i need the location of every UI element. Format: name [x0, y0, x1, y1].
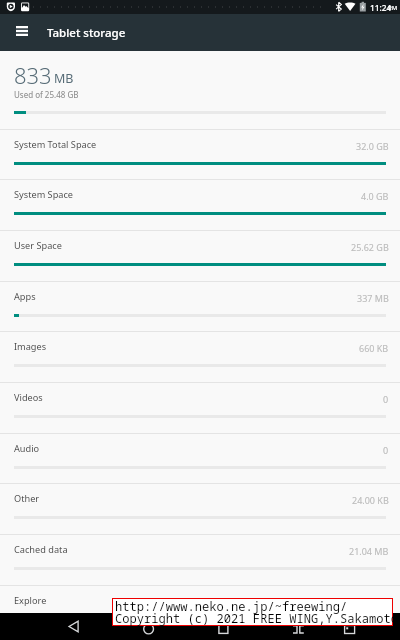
button[interactable]: System Space [0, 180, 400, 230]
button[interactable]: Apps [0, 282, 400, 332]
staticText: Cached data [14, 543, 68, 556]
staticText: 4.0 GB [361, 190, 389, 202]
staticText: MB [54, 70, 74, 87]
staticText: 32.0 GB [356, 140, 389, 152]
staticText: Apps [14, 290, 36, 303]
staticText: http://www.neko.ne.jp/~freewing/ [115, 598, 348, 614]
button[interactable]: User Space [0, 231, 400, 281]
staticText: PM [388, 4, 398, 12]
staticText: 21.04 MB [349, 545, 389, 557]
button[interactable]: System Total Space [0, 130, 400, 180]
button[interactable]: Screenshot [333, 613, 366, 640]
button[interactable]: Collapse [282, 613, 315, 640]
button[interactable]: Images [0, 332, 400, 382]
button[interactable]: Back [57, 613, 90, 640]
button[interactable]: Home [132, 613, 165, 640]
staticText: System Space [14, 188, 74, 201]
staticText: Videos [14, 391, 43, 404]
staticText: 0 [383, 444, 389, 456]
staticText: 11:24 [370, 2, 392, 13]
staticText: Audio [14, 442, 40, 455]
button[interactable]: Cached data [0, 535, 400, 585]
button[interactable]: Other [0, 484, 400, 534]
button[interactable]: Recent apps [207, 613, 240, 640]
button[interactable]: Videos [0, 383, 400, 433]
staticText: Images [14, 340, 47, 353]
staticText: Copyright (c) 2021 FREE WING,Y.Sakamoto [115, 610, 394, 626]
staticText: Used of 25.48 GB [14, 89, 79, 100]
staticText: 660 KB [359, 342, 389, 354]
staticText: User Space [14, 239, 62, 252]
staticText: 337 MB [357, 292, 389, 304]
button[interactable]: Open navigation drawer [0, 14, 43, 51]
staticText: 25.62 GB [351, 241, 389, 253]
staticText: 833 [14, 60, 52, 90]
staticText: Other [14, 492, 40, 505]
staticText: 0 [383, 393, 389, 405]
staticText: Tablet storage [47, 25, 126, 41]
button[interactable]: Explore [0, 586, 400, 636]
staticText: Explore [14, 594, 47, 607]
button[interactable]: Audio [0, 434, 400, 484]
staticText: System Total Space [14, 138, 97, 151]
staticText: 24.00 KB [352, 494, 389, 506]
